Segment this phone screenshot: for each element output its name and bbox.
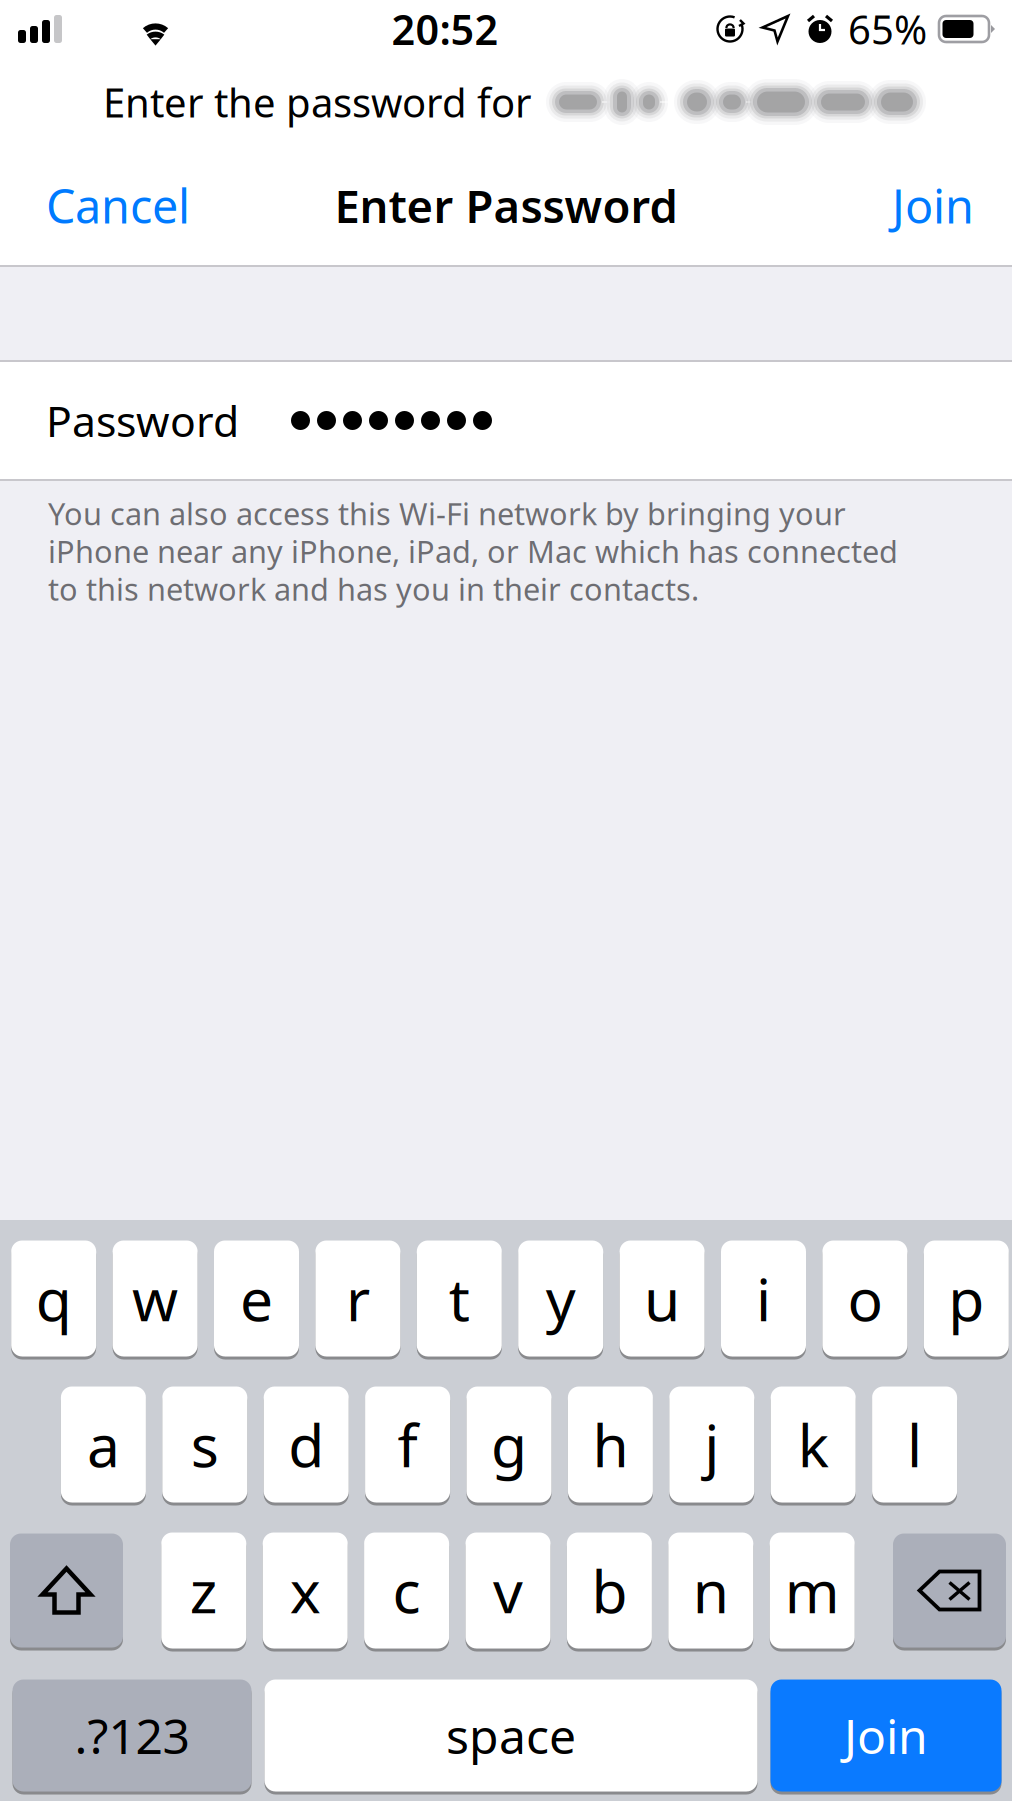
button[interactable]: g bbox=[466, 1385, 551, 1504]
staticText: Join bbox=[844, 1704, 928, 1767]
staticText: l bbox=[907, 1405, 922, 1483]
button[interactable]: h bbox=[568, 1385, 653, 1504]
button[interactable]: c bbox=[364, 1531, 449, 1650]
button[interactable]: .?123 bbox=[12, 1678, 251, 1793]
staticText: x bbox=[290, 1551, 321, 1629]
button[interactable]: m bbox=[770, 1531, 855, 1650]
button[interactable]: space bbox=[264, 1678, 757, 1793]
button[interactable]: q bbox=[11, 1239, 96, 1358]
button[interactable]: r bbox=[315, 1239, 400, 1358]
staticText: v bbox=[493, 1551, 523, 1629]
staticText: w bbox=[132, 1259, 178, 1337]
button[interactable]: i bbox=[721, 1239, 806, 1358]
button[interactable]: v bbox=[465, 1531, 550, 1650]
button[interactable]: b bbox=[567, 1531, 652, 1650]
button[interactable]: s bbox=[162, 1385, 247, 1504]
button[interactable]: z bbox=[161, 1531, 246, 1650]
button[interactable]: w bbox=[113, 1239, 198, 1358]
staticText: o bbox=[847, 1259, 882, 1337]
staticText: a bbox=[87, 1405, 120, 1483]
staticText: Join bbox=[892, 174, 974, 236]
button[interactable]: x bbox=[263, 1531, 348, 1650]
staticText: t bbox=[449, 1259, 470, 1337]
staticText: .?123 bbox=[74, 1704, 189, 1767]
button[interactable]: j bbox=[669, 1385, 754, 1504]
staticText: e bbox=[240, 1259, 273, 1337]
button[interactable]: Cancel bbox=[0, 148, 210, 262]
staticText: space bbox=[446, 1704, 576, 1767]
button[interactable]: Join bbox=[770, 1678, 1001, 1793]
staticText: j bbox=[704, 1405, 719, 1483]
button[interactable]: p bbox=[924, 1239, 1009, 1358]
button[interactable]: n bbox=[668, 1531, 753, 1650]
staticText: 20:52 bbox=[391, 2, 498, 56]
staticText: c bbox=[393, 1551, 421, 1629]
staticText: k bbox=[798, 1405, 829, 1483]
staticText: Password bbox=[46, 392, 239, 449]
staticText: r bbox=[346, 1259, 370, 1337]
button[interactable]: k bbox=[771, 1385, 856, 1504]
button[interactable]: u bbox=[620, 1239, 705, 1358]
button[interactable]: f bbox=[365, 1385, 450, 1504]
staticText: y bbox=[546, 1259, 576, 1337]
staticText: z bbox=[190, 1551, 218, 1629]
button[interactable]: o bbox=[822, 1239, 907, 1358]
staticText: q bbox=[36, 1259, 72, 1337]
staticText: n bbox=[693, 1551, 729, 1629]
button[interactable]: e bbox=[214, 1239, 299, 1358]
staticText: b bbox=[591, 1551, 627, 1629]
button[interactable]: y bbox=[518, 1239, 603, 1358]
staticText: s bbox=[191, 1405, 219, 1483]
staticText: u bbox=[644, 1259, 680, 1337]
staticText: d bbox=[288, 1405, 324, 1483]
button[interactable]: Delete bbox=[893, 1532, 1006, 1649]
staticText: m bbox=[785, 1551, 840, 1629]
staticText: g bbox=[491, 1405, 527, 1483]
button[interactable]: Join bbox=[872, 148, 1012, 262]
button[interactable]: Shift bbox=[10, 1532, 123, 1649]
staticText: 65% bbox=[848, 2, 927, 55]
button[interactable]: l bbox=[872, 1385, 957, 1504]
button[interactable]: t bbox=[417, 1239, 502, 1358]
staticText: Cancel bbox=[46, 174, 190, 236]
staticText: You can also access this Wi-Fi network b… bbox=[48, 493, 898, 609]
staticText: i bbox=[756, 1259, 771, 1337]
staticText: Enter the password for bbox=[103, 75, 532, 128]
staticText: f bbox=[398, 1405, 418, 1483]
button[interactable]: a bbox=[61, 1385, 146, 1504]
staticText: Enter Password bbox=[334, 175, 677, 236]
staticText: p bbox=[948, 1259, 984, 1337]
staticText: h bbox=[592, 1405, 628, 1483]
button[interactable]: d bbox=[264, 1385, 349, 1504]
